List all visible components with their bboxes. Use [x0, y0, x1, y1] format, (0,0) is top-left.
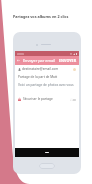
button[interactable]: Back [15, 56, 79, 65]
staticText: Sécuriser le partage [23, 97, 53, 101]
staticText: Envoyer par email [23, 58, 56, 63]
other: Back [17, 59, 20, 62]
staticText: ENVOYER [59, 58, 77, 63]
staticText: destinataire@email.com [22, 67, 59, 71]
button[interactable]: Sécuriser le partage [15, 95, 79, 103]
button[interactable]: Voici un partage de photos avec vous [15, 81, 79, 89]
button[interactable]: Partage de la part de Matt [15, 73, 79, 81]
staticText: Voici un partage de photos avec vous [18, 83, 74, 87]
button[interactable]: ENVOYER [59, 58, 77, 63]
button[interactable]: destinataire@email.com [15, 65, 79, 73]
staticText: Partage de la part de Matt [18, 75, 58, 79]
staticText: Partagez vos albums en 2 clics [13, 14, 69, 19]
